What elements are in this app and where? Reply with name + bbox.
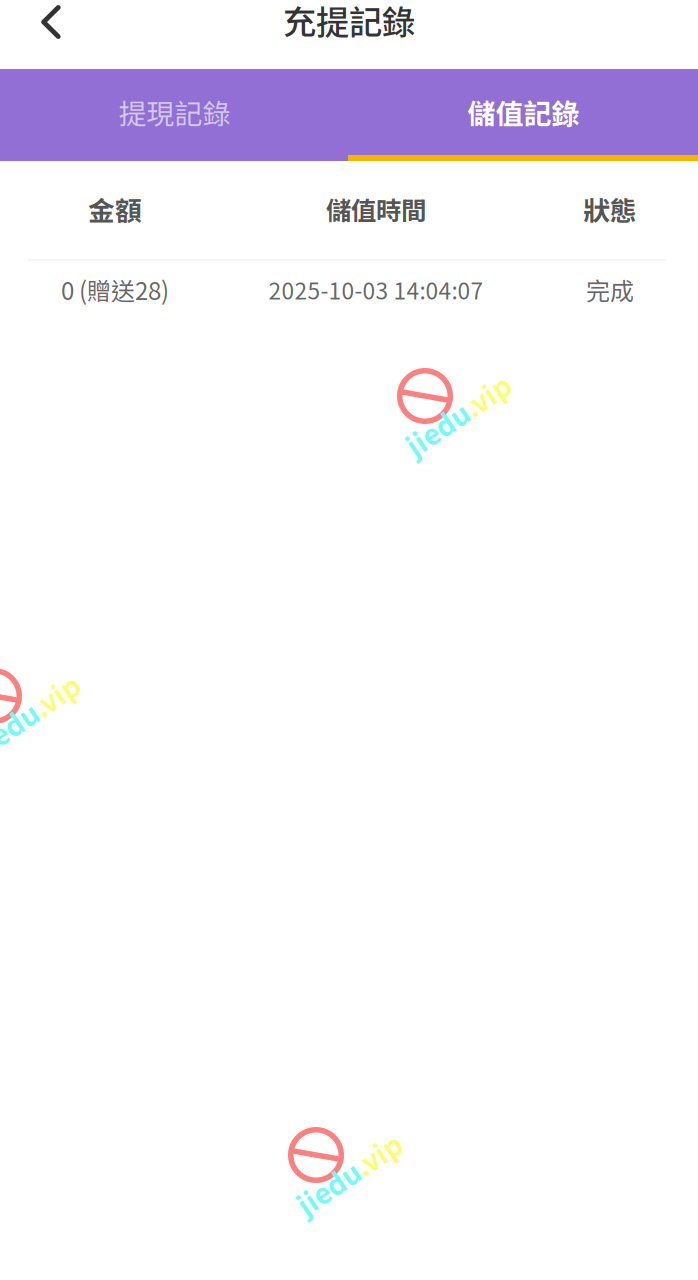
staticText: 提現記錄 xyxy=(118,92,230,132)
staticText: 完成 xyxy=(586,272,634,307)
staticText: 儲值時間 xyxy=(326,191,426,227)
staticText: 儲值記錄 xyxy=(467,92,579,132)
staticText: .vip xyxy=(359,1153,409,1193)
staticText: 金額 xyxy=(88,190,142,228)
staticText: .vip xyxy=(37,694,87,734)
staticText: jiedu xyxy=(398,394,468,434)
staticText: jiedu xyxy=(0,694,37,734)
staticText: jiedu xyxy=(289,1153,359,1193)
button[interactable]: Back xyxy=(0,0,84,44)
button[interactable]: 儲值記錄 xyxy=(349,69,698,155)
button[interactable]: 提現記錄 xyxy=(0,69,349,155)
staticText: 狀態 xyxy=(583,190,637,228)
staticText: .vip xyxy=(468,394,518,434)
staticText: 充提記錄 xyxy=(283,0,415,44)
staticText: 2025-10-03 14:04:07 xyxy=(268,273,483,306)
staticText: 0 (贈送28) xyxy=(61,272,169,307)
